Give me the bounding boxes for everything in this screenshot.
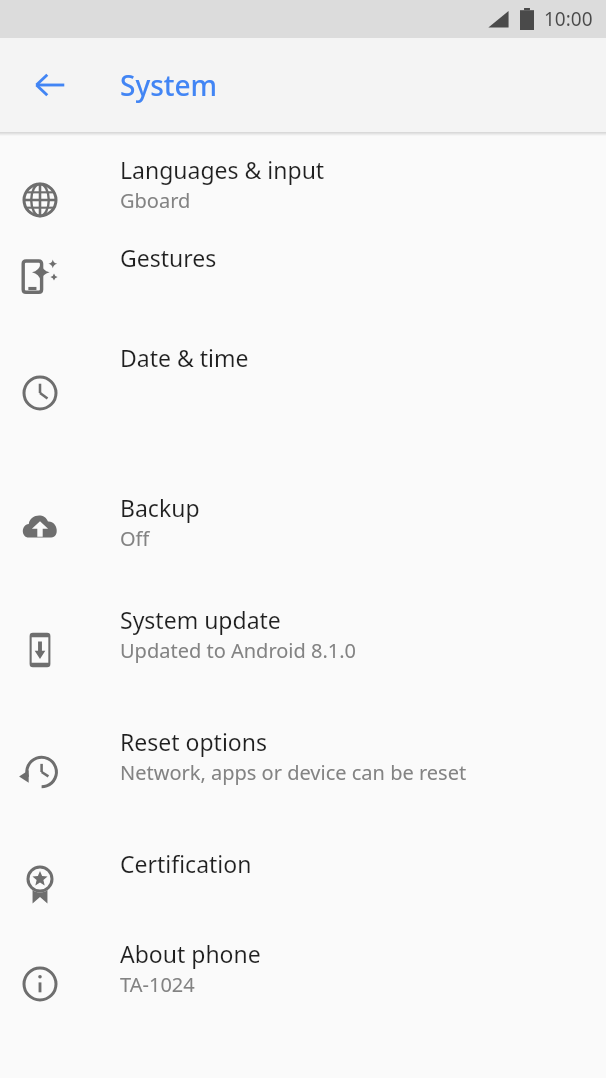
staticText: Network, apps or device can be reset xyxy=(120,759,467,786)
staticText: Updated to Android 8.1.0 xyxy=(120,637,357,664)
staticText: Certification xyxy=(120,848,252,879)
button[interactable]: Languages & input xyxy=(0,144,606,232)
button[interactable]: Gestures xyxy=(0,232,606,322)
staticText: Gestures xyxy=(120,242,217,273)
staticText: Date & time xyxy=(120,342,249,373)
button[interactable]: System update xyxy=(0,594,606,716)
staticText: Off xyxy=(120,525,150,552)
button[interactable]: About phone xyxy=(0,928,606,1038)
button[interactable]: Backup xyxy=(0,472,606,594)
button[interactable]: Back xyxy=(14,49,86,121)
staticText: 10:00 xyxy=(544,6,593,32)
button[interactable]: Date & time xyxy=(0,322,606,472)
button[interactable]: Reset options xyxy=(0,716,606,838)
staticText: System update xyxy=(120,604,281,635)
staticText: Gboard xyxy=(120,187,191,214)
button[interactable]: Certification xyxy=(0,838,606,928)
staticText: TA-1024 xyxy=(120,971,195,998)
staticText: Backup xyxy=(120,492,200,523)
staticText: Languages & input xyxy=(120,154,325,185)
staticText: System xyxy=(120,66,218,104)
staticText: About phone xyxy=(120,938,261,969)
staticText: Reset options xyxy=(120,726,267,757)
